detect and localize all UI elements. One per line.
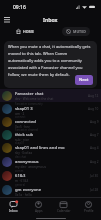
button[interactable]: MUTED xyxy=(62,27,90,36)
staticText: Apps xyxy=(35,209,43,213)
staticText: anonymous xyxy=(15,159,39,165)
staticText: dev · Welcome to the chat xyxy=(15,97,54,101)
staticText: Inbox xyxy=(9,209,18,213)
staticText: 09:16 xyxy=(13,4,26,11)
button[interactable]: dev chat xyxy=(0,155,101,169)
staticText: skap01 and lines and mo xyxy=(15,145,65,151)
staticText: When you mute a chat, it automatically g… xyxy=(8,44,93,78)
button[interactable]: Menu xyxy=(1,14,12,25)
staticText: Aug 2 xyxy=(90,160,99,164)
staticText: Jul 28 xyxy=(90,188,99,192)
staticText: Aug 7 xyxy=(90,133,99,137)
staticText: gm · 2 xyxy=(15,112,25,115)
staticText: skap01 3 xyxy=(15,106,33,112)
staticText: Aug 4 xyxy=(90,146,99,150)
button[interactable]: connect xyxy=(0,115,101,128)
button[interactable]: Next xyxy=(75,75,93,85)
staticText: sub · nice xyxy=(15,138,30,141)
staticText: connected xyxy=(15,119,36,125)
staticText: dev chat xyxy=(15,155,27,159)
button[interactable]: general xyxy=(0,183,101,197)
button[interactable]: Profile xyxy=(76,198,101,216)
staticText: my dev · anonymous xyxy=(15,165,46,169)
staticText: Farcaster community xyxy=(15,102,43,106)
staticText: HOME xyxy=(23,29,34,34)
staticText: skap01 xyxy=(15,141,25,145)
staticText: Calendar xyxy=(57,209,71,213)
button[interactable]: skap01 xyxy=(0,141,101,155)
staticText: gm everyone xyxy=(15,187,42,193)
staticText: 61&3 xyxy=(15,173,26,179)
staticText: connect xyxy=(15,115,26,119)
button[interactable]: HOME xyxy=(12,27,38,36)
button[interactable]: comm xyxy=(0,169,101,183)
button[interactable]: Apps xyxy=(26,198,51,216)
staticText: 0xc5 · hey xyxy=(15,125,30,128)
staticText: Aug 12 xyxy=(88,94,99,98)
button[interactable]: Farcaster community xyxy=(0,102,101,115)
staticText: Jul 30 xyxy=(90,174,99,178)
staticText: Aug 9 xyxy=(90,120,99,124)
staticText: m · 61&3 xyxy=(15,179,29,183)
staticText: Profile xyxy=(84,209,94,213)
button[interactable]: Inbox xyxy=(0,198,26,216)
button[interactable]: Calendar xyxy=(51,198,76,216)
staticText: Aug 10 xyxy=(88,107,99,111)
staticText: Inbox xyxy=(43,16,58,23)
button[interactable]: Farcaster channel xyxy=(0,128,101,141)
staticText: Next xyxy=(79,77,89,83)
staticText: Farcaster channel xyxy=(15,128,39,132)
staticText: comm xyxy=(15,169,24,173)
staticText: general xyxy=(15,183,25,187)
button[interactable]: Farcaster chat xyxy=(0,89,101,102)
staticText: MUTED xyxy=(73,29,86,34)
staticText: Farcaster chat xyxy=(15,91,44,97)
staticText: 0x1a · hello xyxy=(15,193,32,197)
staticText: thick sub xyxy=(15,132,34,138)
staticText: sky · 0xcfaa xyxy=(15,151,33,155)
